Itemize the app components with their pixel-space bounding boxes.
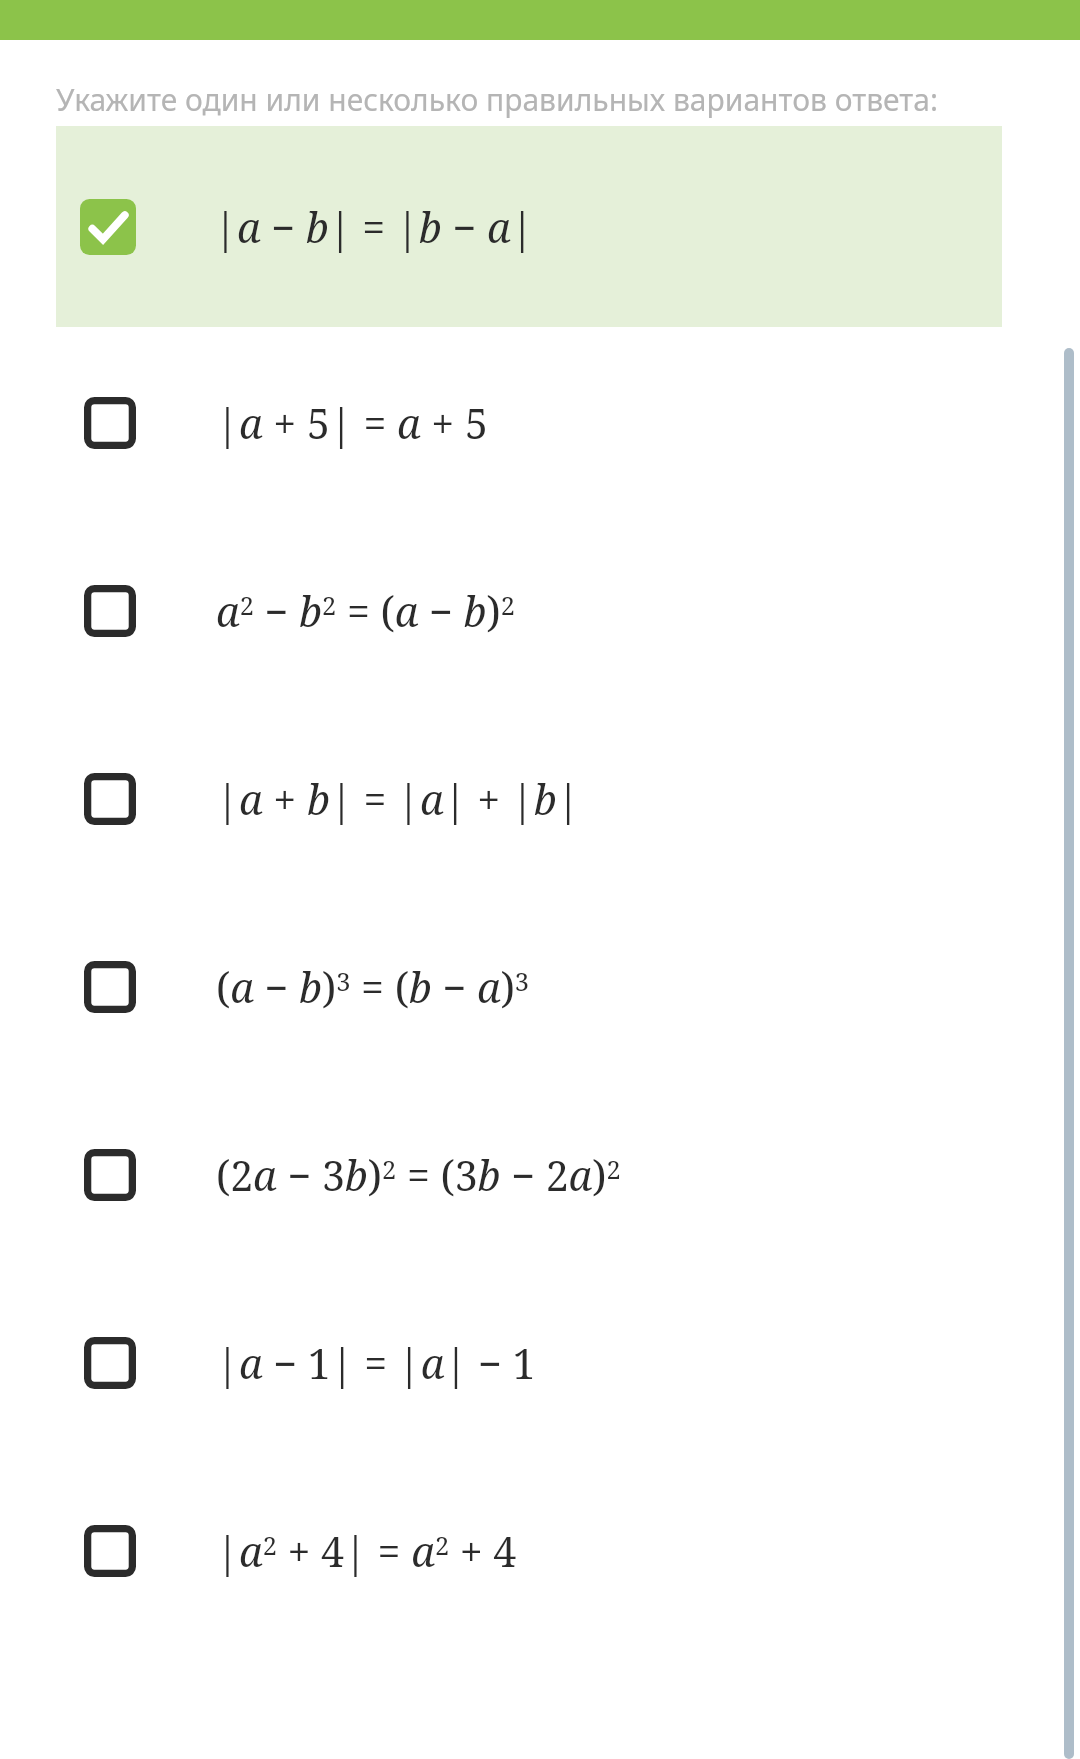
staticText: (2a − 3b)2 = (3b − 2a)2 [216, 1147, 621, 1203]
staticText: |a − b| = |b − a| [214, 199, 534, 255]
other: Вариант ответа 4 [84, 773, 136, 825]
other: Выбранный вариант ответа [80, 199, 136, 255]
button[interactable]: Вариант ответа 3 [56, 561, 1002, 661]
button[interactable]: Вариант ответа 5 [56, 937, 1002, 1037]
other: Вариант ответа 3 [84, 585, 136, 637]
staticText: (a − b)3 = (b − a)3 [216, 959, 530, 1015]
staticText: Укажите один или несколько правильных ва… [56, 79, 938, 120]
staticText: |a + b| = |a| + |b| [216, 771, 580, 827]
staticText: |a + 5| = a + 5 [216, 395, 488, 451]
button[interactable]: Выбранный вариант ответа [56, 126, 1002, 327]
button[interactable]: Вариант ответа 4 [56, 749, 1002, 849]
button[interactable]: Вариант ответа 6 [56, 1125, 1002, 1225]
other: Вариант ответа 8 [84, 1525, 136, 1577]
other: Вариант ответа 6 [84, 1149, 136, 1201]
other: Вариант ответа 2 [84, 397, 136, 449]
button[interactable]: Вариант ответа 8 [56, 1501, 1002, 1601]
staticText: |a − 1| = |a| − 1 [216, 1335, 536, 1391]
other: Вариант ответа 7 [84, 1337, 136, 1389]
staticText: a2 − b2 = (a − b)2 [216, 583, 515, 639]
button[interactable]: Вариант ответа 7 [56, 1313, 1002, 1413]
staticText: |a2 + 4| = a2 + 4 [216, 1523, 517, 1579]
button[interactable]: Вариант ответа 2 [56, 373, 1002, 473]
other: Вариант ответа 5 [84, 961, 136, 1013]
